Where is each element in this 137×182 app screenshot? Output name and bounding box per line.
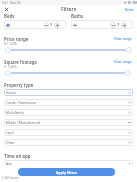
staticText: Property type (4, 82, 34, 88)
staticText: $0 - $2M+ (4, 42, 18, 46)
staticText: Mobile / Manufactured (6, 121, 41, 125)
button[interactable]: Apply filters (18, 168, 115, 176)
button[interactable]: Mobile / Manufactured (4, 119, 133, 126)
staticText: Land (6, 131, 14, 135)
button[interactable]: House (4, 89, 133, 96)
button[interactable]: Close (3, 6, 9, 12)
button[interactable]: Decrease (110, 22, 116, 28)
button[interactable]: Condo / Townhouse (4, 99, 133, 106)
button[interactable]: Other (4, 139, 133, 146)
staticText: Any (6, 162, 12, 166)
staticText: Reset (125, 7, 134, 11)
button[interactable]: Clear range (113, 36, 133, 42)
staticText: House (6, 91, 16, 95)
button[interactable] (0, 70, 137, 76)
button[interactable]: Increase (121, 22, 127, 28)
button[interactable]: 1,284 homes (2, 176, 19, 180)
staticText: Baths (71, 13, 84, 19)
staticText: 1 (117, 22, 120, 27)
staticText: Clear range (114, 60, 132, 64)
button[interactable]: Land (4, 129, 133, 136)
staticText: Square footage (4, 59, 37, 65)
staticText: 0 - 5,000+ (4, 65, 18, 69)
staticText: Apply filters (56, 170, 78, 175)
staticText: Multi-family (6, 111, 24, 115)
button[interactable]: Multi-family (4, 109, 133, 116)
staticText: Time on app (4, 153, 31, 159)
staticText: Price range (4, 36, 29, 42)
staticText: 9:41 (2, 1, 8, 5)
staticText: Filters (61, 6, 77, 13)
staticText: 1 (50, 22, 53, 27)
button[interactable]: Increase (54, 22, 60, 28)
button[interactable]: Reset (122, 6, 137, 12)
staticText: 1,284 homes (2, 176, 19, 180)
button[interactable]: Decrease (43, 22, 49, 28)
staticText: Clear range (114, 37, 132, 41)
button[interactable] (0, 47, 137, 53)
button[interactable]: Clear range (113, 59, 133, 65)
staticText: Wed 24 (10, 1, 21, 5)
staticText: Condo / Townhouse (6, 101, 36, 105)
staticText: Beds (4, 13, 15, 19)
button[interactable]: Any (4, 160, 133, 167)
staticText: Other (6, 141, 15, 145)
